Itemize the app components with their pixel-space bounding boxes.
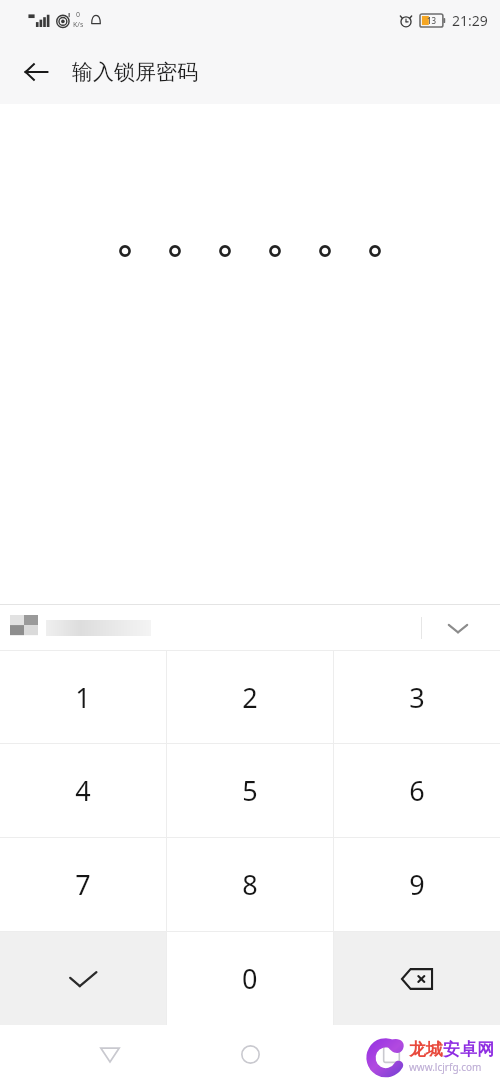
button[interactable]: Hide keyboard	[436, 606, 480, 650]
button[interactable]: 3	[334, 651, 500, 743]
button[interactable]: Backspace	[334, 932, 500, 1025]
button[interactable]: Back	[79, 1025, 141, 1084]
staticText: 输入锁屏密码	[72, 59, 198, 85]
staticText: 安	[443, 1039, 460, 1060]
staticText: 1	[75, 679, 91, 716]
button[interactable]: 1	[0, 651, 166, 743]
button[interactable]: 4	[0, 744, 166, 837]
staticText: 4	[75, 772, 91, 809]
button[interactable]: 7	[0, 838, 166, 931]
button[interactable]: Recent apps	[360, 1025, 422, 1084]
button[interactable]: Home	[219, 1025, 281, 1084]
staticText: 0	[242, 960, 258, 997]
staticText: 龙	[409, 1039, 426, 1060]
button[interactable]: 9	[334, 838, 500, 931]
staticText: 卓	[460, 1039, 477, 1060]
button[interactable]: 2	[167, 651, 333, 743]
button[interactable]: 5	[167, 744, 333, 837]
staticText: 城	[426, 1039, 443, 1060]
staticText: 6	[409, 772, 425, 809]
staticText: 0	[76, 10, 81, 20]
staticText: 13	[427, 15, 437, 26]
staticText: www.lcjrfg.com	[409, 1060, 482, 1074]
staticText: K/s	[73, 20, 84, 30]
staticText: 9	[409, 866, 425, 903]
staticText: 网	[477, 1039, 494, 1060]
staticText: 3	[409, 679, 425, 716]
button[interactable]: 8	[167, 838, 333, 931]
staticText: 2	[242, 679, 258, 716]
staticText: 5	[242, 772, 258, 809]
staticText: 21:29	[452, 11, 488, 30]
button[interactable]: Back	[12, 48, 60, 96]
staticText: 8	[242, 866, 258, 903]
button[interactable]: Confirm	[0, 932, 166, 1025]
staticText: 7	[75, 866, 91, 903]
button[interactable]: 6	[334, 744, 500, 837]
button[interactable]: 0	[167, 932, 333, 1025]
